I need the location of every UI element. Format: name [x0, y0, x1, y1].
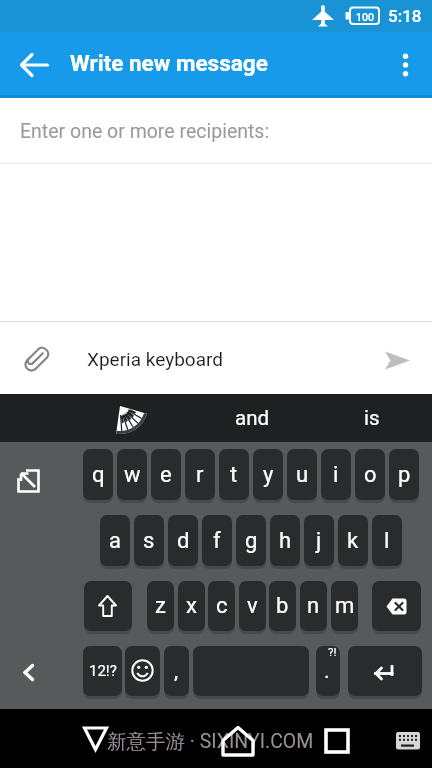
staticText: j	[316, 528, 322, 554]
button[interactable]	[84, 581, 132, 631]
button[interactable]: b	[269, 581, 296, 631]
button[interactable]	[388, 726, 424, 760]
button[interactable]: k	[338, 515, 368, 566]
button[interactable]	[348, 646, 422, 696]
staticText: and	[235, 406, 270, 430]
staticText: o	[364, 462, 377, 488]
button[interactable]: m	[331, 581, 358, 631]
button[interactable]	[376, 336, 420, 384]
staticText: is	[364, 406, 380, 430]
staticText: t	[230, 462, 238, 488]
button[interactable]: z	[147, 581, 174, 631]
staticText: 100	[356, 11, 374, 23]
button[interactable]: p	[389, 449, 419, 500]
staticText: .	[324, 659, 330, 684]
staticText: h	[279, 528, 292, 554]
button[interactable]: q	[83, 449, 113, 500]
staticText: 5:18	[388, 6, 422, 26]
staticText: i	[333, 462, 339, 488]
staticText: 12!?	[89, 662, 117, 680]
button[interactable]: h	[270, 515, 300, 566]
staticText: p	[398, 462, 411, 488]
button[interactable]: t	[219, 449, 249, 500]
button[interactable]	[14, 45, 54, 85]
staticText: l	[384, 528, 390, 554]
staticText: k	[347, 528, 359, 554]
staticText: c	[216, 593, 228, 619]
staticText: e	[160, 462, 172, 488]
button[interactable]: a	[100, 515, 130, 566]
button[interactable]: and	[180, 394, 324, 442]
button[interactable]	[316, 646, 340, 696]
button[interactable]	[315, 716, 359, 760]
button[interactable]: x	[178, 581, 205, 631]
button[interactable]	[193, 646, 309, 696]
staticText: ,	[174, 659, 179, 684]
button[interactable]: e	[151, 449, 181, 500]
button[interactable]	[388, 45, 424, 85]
staticText: b	[276, 593, 289, 619]
button[interactable]	[8, 652, 44, 690]
staticText: Write new message	[70, 50, 268, 76]
button[interactable]: ,	[164, 646, 189, 696]
staticText: ?!	[328, 645, 337, 658]
staticText: f	[213, 528, 221, 554]
button[interactable]	[8, 460, 50, 502]
staticText: a	[109, 528, 121, 554]
staticText: x	[186, 593, 197, 619]
button[interactable]: s	[134, 515, 164, 566]
button[interactable]: r	[185, 449, 215, 500]
button[interactable]	[12, 336, 60, 384]
button[interactable]: d	[168, 515, 198, 566]
staticText: n	[307, 593, 320, 619]
button[interactable]: o	[355, 449, 385, 500]
staticText: w	[124, 462, 141, 488]
staticText: m	[335, 593, 355, 619]
staticText: s	[143, 528, 155, 554]
staticText: v	[247, 593, 258, 619]
staticText: Enter one or more recipients:	[20, 120, 270, 143]
button[interactable]: g	[236, 515, 266, 566]
staticText: q	[92, 462, 105, 488]
button[interactable]	[372, 581, 421, 631]
button[interactable]: is	[324, 394, 420, 442]
staticText: d	[177, 528, 190, 554]
staticText: Xperia keyboard	[87, 348, 223, 370]
button[interactable]	[125, 646, 160, 696]
button[interactable]: u	[287, 449, 317, 500]
staticText: u	[296, 462, 309, 488]
staticText: g	[245, 528, 258, 554]
button[interactable]: 12!?	[83, 646, 122, 696]
button[interactable]: j	[304, 515, 334, 566]
button[interactable]: c	[208, 581, 235, 631]
staticText: y	[263, 462, 274, 488]
staticText: z	[155, 593, 166, 619]
button[interactable]: i	[321, 449, 351, 500]
button[interactable]	[0, 98, 432, 164]
button[interactable]: v	[239, 581, 266, 631]
staticText: r	[196, 462, 204, 488]
button[interactable]: y	[253, 449, 283, 500]
button[interactable]: f	[202, 515, 232, 566]
staticText: 新意手游 · SIXINYI.COM	[107, 729, 314, 754]
button[interactable]: l	[372, 515, 402, 566]
button[interactable]	[74, 716, 118, 760]
button[interactable]: n	[300, 581, 327, 631]
button[interactable]: w	[117, 449, 147, 500]
button[interactable]	[216, 716, 260, 760]
